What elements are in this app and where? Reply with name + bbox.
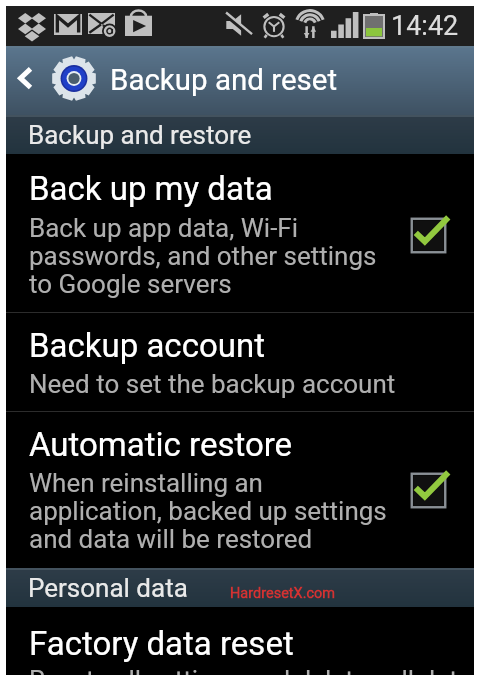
staticText: Factory data reset xyxy=(29,624,294,663)
button[interactable]: Backup account xyxy=(6,313,474,411)
staticText: Back up app data, Wi-Fi passwords, and o… xyxy=(29,213,377,299)
staticText: Backup and reset xyxy=(110,63,338,98)
staticText: When reinstalling an application, backed… xyxy=(29,468,387,554)
staticText: Automatic restore xyxy=(29,425,293,464)
button[interactable]: Back up my data xyxy=(6,154,474,312)
button[interactable]: Backup and reset xyxy=(6,46,474,115)
staticText: Need to set the backup account xyxy=(29,369,396,399)
staticText: Back up my data xyxy=(29,169,273,208)
button[interactable]: Toggle checkbox xyxy=(402,460,458,516)
staticText: HardresetX.com xyxy=(230,585,336,602)
button[interactable]: Automatic restore xyxy=(6,412,474,568)
staticText: Personal data xyxy=(28,573,188,603)
staticText: Resets all settings and deletes all data… xyxy=(29,665,481,675)
button[interactable]: Factory data reset xyxy=(6,607,474,675)
staticText: 14:42 xyxy=(391,10,459,42)
staticText: Backup and restore xyxy=(28,120,252,150)
staticText: Backup account xyxy=(29,326,265,365)
button[interactable]: Toggle checkbox xyxy=(402,205,458,261)
